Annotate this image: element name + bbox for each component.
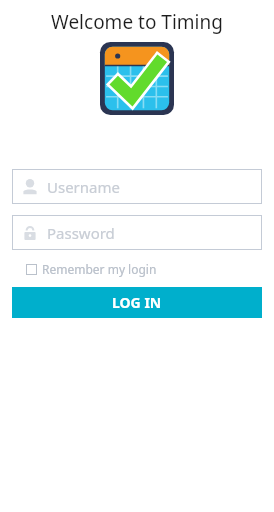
button[interactable]: Password bbox=[12, 215, 262, 250]
button[interactable]: LOG IN bbox=[12, 287, 262, 318]
other: Timing app logo bbox=[100, 42, 174, 115]
staticText: Remember my login bbox=[42, 261, 157, 277]
staticText: Welcome to Timing bbox=[51, 9, 223, 35]
button[interactable]: Username bbox=[12, 169, 262, 204]
staticText: LOG IN bbox=[112, 293, 162, 312]
staticText: Password bbox=[47, 223, 115, 243]
staticText: Username bbox=[47, 177, 120, 197]
button[interactable]: Remember my login bbox=[12, 259, 262, 279]
